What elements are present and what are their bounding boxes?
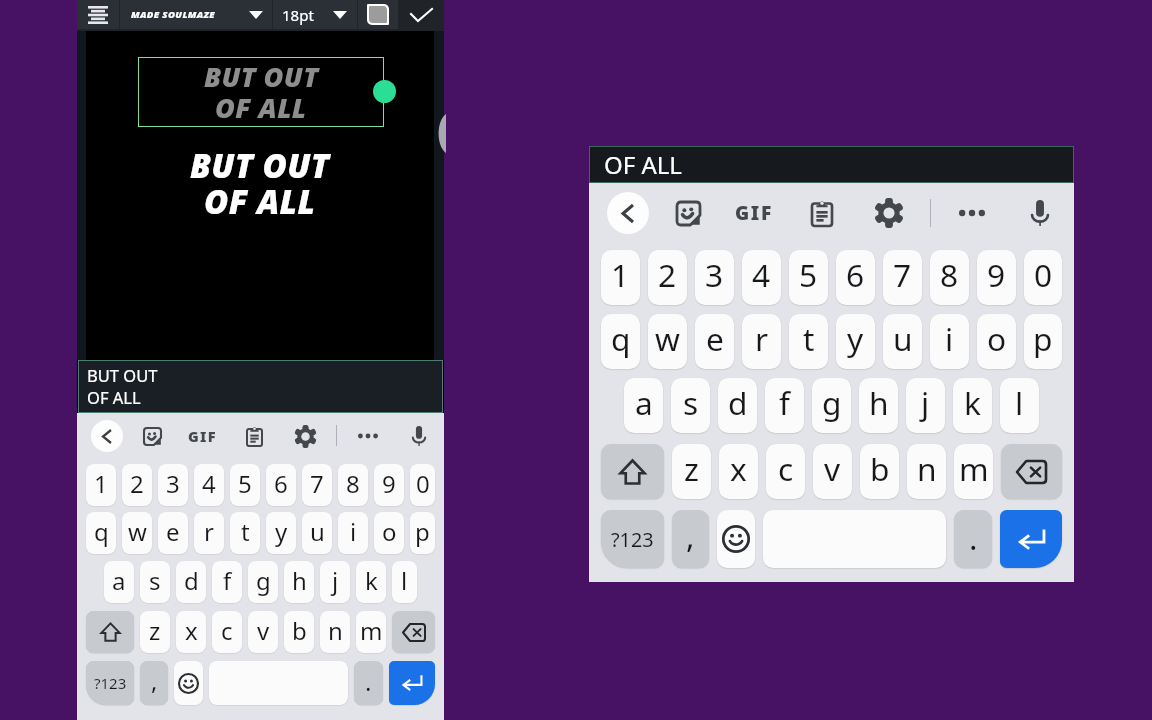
- button[interactable]: .: [354, 661, 383, 705]
- button[interactable]: k: [953, 378, 992, 433]
- button[interactable]: GIF: [186, 420, 218, 452]
- button[interactable]: q: [86, 512, 116, 554]
- button[interactable]: l: [392, 561, 417, 603]
- button[interactable]: p: [1024, 314, 1062, 369]
- button[interactable]: Settings: [868, 192, 910, 234]
- button[interactable]: ,: [140, 661, 168, 705]
- button[interactable]: Backspace: [392, 611, 435, 653]
- button[interactable]: f: [212, 561, 242, 603]
- button[interactable]: 4: [742, 250, 781, 305]
- button[interactable]: o: [977, 314, 1016, 369]
- button[interactable]: n: [907, 444, 946, 499]
- button[interactable]: 5: [230, 464, 260, 506]
- button[interactable]: h: [284, 561, 314, 603]
- button[interactable]: Back: [91, 420, 123, 452]
- button[interactable]: g: [812, 378, 851, 433]
- button[interactable]: 4: [194, 464, 224, 506]
- button[interactable]: ?123: [86, 661, 134, 705]
- button[interactable]: d: [718, 378, 757, 433]
- button[interactable]: Enter: [389, 661, 435, 705]
- button[interactable]: 3: [158, 464, 188, 506]
- button[interactable]: j: [906, 378, 945, 433]
- button[interactable]: OF ALL: [589, 146, 1074, 183]
- button[interactable]: u: [302, 512, 332, 554]
- button[interactable]: Done: [398, 0, 444, 29]
- button[interactable]: Clipboard: [801, 192, 843, 234]
- button[interactable]: 6: [836, 250, 875, 305]
- button[interactable]: s: [671, 378, 710, 433]
- button[interactable]: 9: [374, 464, 404, 506]
- button[interactable]: m: [356, 611, 386, 653]
- button[interactable]: d: [176, 561, 206, 603]
- button[interactable]: Resize handle: [373, 80, 396, 103]
- button[interactable]: 0: [410, 464, 435, 506]
- button[interactable]: 9: [977, 250, 1016, 305]
- button[interactable]: b: [860, 444, 899, 499]
- button[interactable]: v: [813, 444, 852, 499]
- button[interactable]: 6: [266, 464, 296, 506]
- button[interactable]: 8: [930, 250, 969, 305]
- button[interactable]: a: [624, 378, 663, 433]
- button[interactable]: h: [859, 378, 898, 433]
- button[interactable]: z: [672, 444, 711, 499]
- button[interactable]: 2: [122, 464, 152, 506]
- button[interactable]: 1: [601, 250, 640, 305]
- button[interactable]: Shift: [601, 444, 664, 499]
- button[interactable]: 18pt: [273, 0, 357, 29]
- button[interactable]: e: [158, 512, 188, 554]
- button[interactable]: y: [836, 314, 875, 369]
- button[interactable]: 7: [302, 464, 332, 506]
- button[interactable]: ?123: [601, 510, 664, 568]
- button[interactable]: Voice input: [403, 420, 435, 452]
- button[interactable]: Alignment: [77, 0, 119, 29]
- button[interactable]: l: [1000, 378, 1039, 433]
- button[interactable]: w: [648, 314, 687, 369]
- button[interactable]: .: [954, 510, 992, 568]
- button[interactable]: Emoji: [174, 661, 203, 705]
- button[interactable]: s: [140, 561, 170, 603]
- button[interactable]: a: [104, 561, 134, 603]
- button[interactable]: g: [248, 561, 278, 603]
- button[interactable]: i: [930, 314, 969, 369]
- button[interactable]: GIF: [733, 192, 775, 234]
- button[interactable]: 2: [648, 250, 687, 305]
- button[interactable]: t: [230, 512, 260, 554]
- button[interactable]: Shift: [86, 611, 134, 653]
- button[interactable]: Backspace: [1001, 444, 1062, 499]
- button[interactable]: q: [601, 314, 640, 369]
- button[interactable]: MADE SOULMAZE: [120, 0, 272, 29]
- button[interactable]: x: [176, 611, 206, 653]
- button[interactable]: f: [765, 378, 804, 433]
- button[interactable]: More options: [352, 420, 384, 452]
- button[interactable]: y: [266, 512, 296, 554]
- button[interactable]: n: [320, 611, 350, 653]
- button[interactable]: 8: [338, 464, 368, 506]
- button[interactable]: ,: [672, 510, 709, 568]
- button[interactable]: BUT OUT: [138, 57, 384, 127]
- button[interactable]: m: [954, 444, 993, 499]
- button[interactable]: e: [695, 314, 734, 369]
- button[interactable]: Stickers: [667, 192, 709, 234]
- button[interactable]: Clipboard: [238, 420, 270, 452]
- button[interactable]: p: [410, 512, 435, 554]
- button[interactable]: BUT OUT: [78, 360, 443, 413]
- button[interactable]: Back: [607, 192, 649, 234]
- button[interactable]: r: [742, 314, 781, 369]
- button[interactable]: c: [766, 444, 805, 499]
- button[interactable]: Voice input: [1019, 192, 1061, 234]
- button[interactable]: 3: [695, 250, 734, 305]
- button[interactable]: 7: [883, 250, 922, 305]
- button[interactable]: More options: [951, 192, 993, 234]
- button[interactable]: t: [789, 314, 828, 369]
- button[interactable]: 5: [789, 250, 828, 305]
- button[interactable]: b: [284, 611, 314, 653]
- button[interactable]: v: [248, 611, 278, 653]
- button[interactable]: k: [356, 561, 386, 603]
- button[interactable]: w: [122, 512, 152, 554]
- button[interactable]: Text colour: [358, 0, 398, 29]
- button[interactable]: z: [140, 611, 170, 653]
- button[interactable]: c: [212, 611, 242, 653]
- button[interactable]: Enter: [1000, 510, 1062, 568]
